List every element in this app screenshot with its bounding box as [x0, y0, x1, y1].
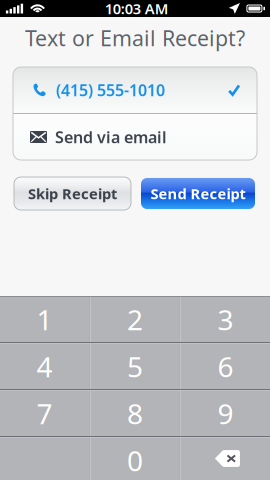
- staticText: Send via email: [55, 126, 167, 148]
- button[interactable]: 6: [181, 344, 270, 389]
- staticText: 6: [217, 348, 233, 385]
- button[interactable]: (415) 555-1010: [13, 67, 257, 113]
- staticText: 0: [127, 442, 143, 479]
- staticText: 4: [36, 348, 52, 385]
- staticText: 9: [217, 395, 233, 432]
- staticText: 7: [36, 395, 52, 432]
- button[interactable]: Send via email: [13, 114, 257, 160]
- button[interactable]: 0: [91, 438, 179, 480]
- staticText: 10:03 AM: [105, 0, 169, 18]
- staticText: Text or Email Receipt?: [25, 24, 245, 52]
- button[interactable]: 4: [0, 344, 89, 389]
- staticText: 3: [217, 301, 233, 338]
- button[interactable]: 5: [91, 344, 179, 389]
- button[interactable]: 8: [91, 391, 179, 436]
- staticText: Send Receipt: [150, 184, 245, 203]
- button[interactable]: 7: [0, 391, 89, 436]
- staticText: 8: [127, 395, 143, 432]
- button[interactable]: 9: [181, 391, 270, 436]
- staticText: 5: [127, 348, 143, 385]
- staticText: Skip Receipt: [28, 184, 117, 203]
- staticText: (415) 555-1010: [56, 79, 165, 101]
- button[interactable]: 3: [181, 297, 270, 342]
- staticText: 1: [36, 301, 52, 338]
- button[interactable]: 2: [91, 297, 179, 342]
- button[interactable]: [181, 438, 270, 480]
- button[interactable]: Skip Receipt: [14, 177, 131, 210]
- button[interactable]: 1: [0, 297, 89, 342]
- staticText: 2: [127, 301, 143, 338]
- button[interactable]: Send Receipt: [140, 177, 256, 210]
